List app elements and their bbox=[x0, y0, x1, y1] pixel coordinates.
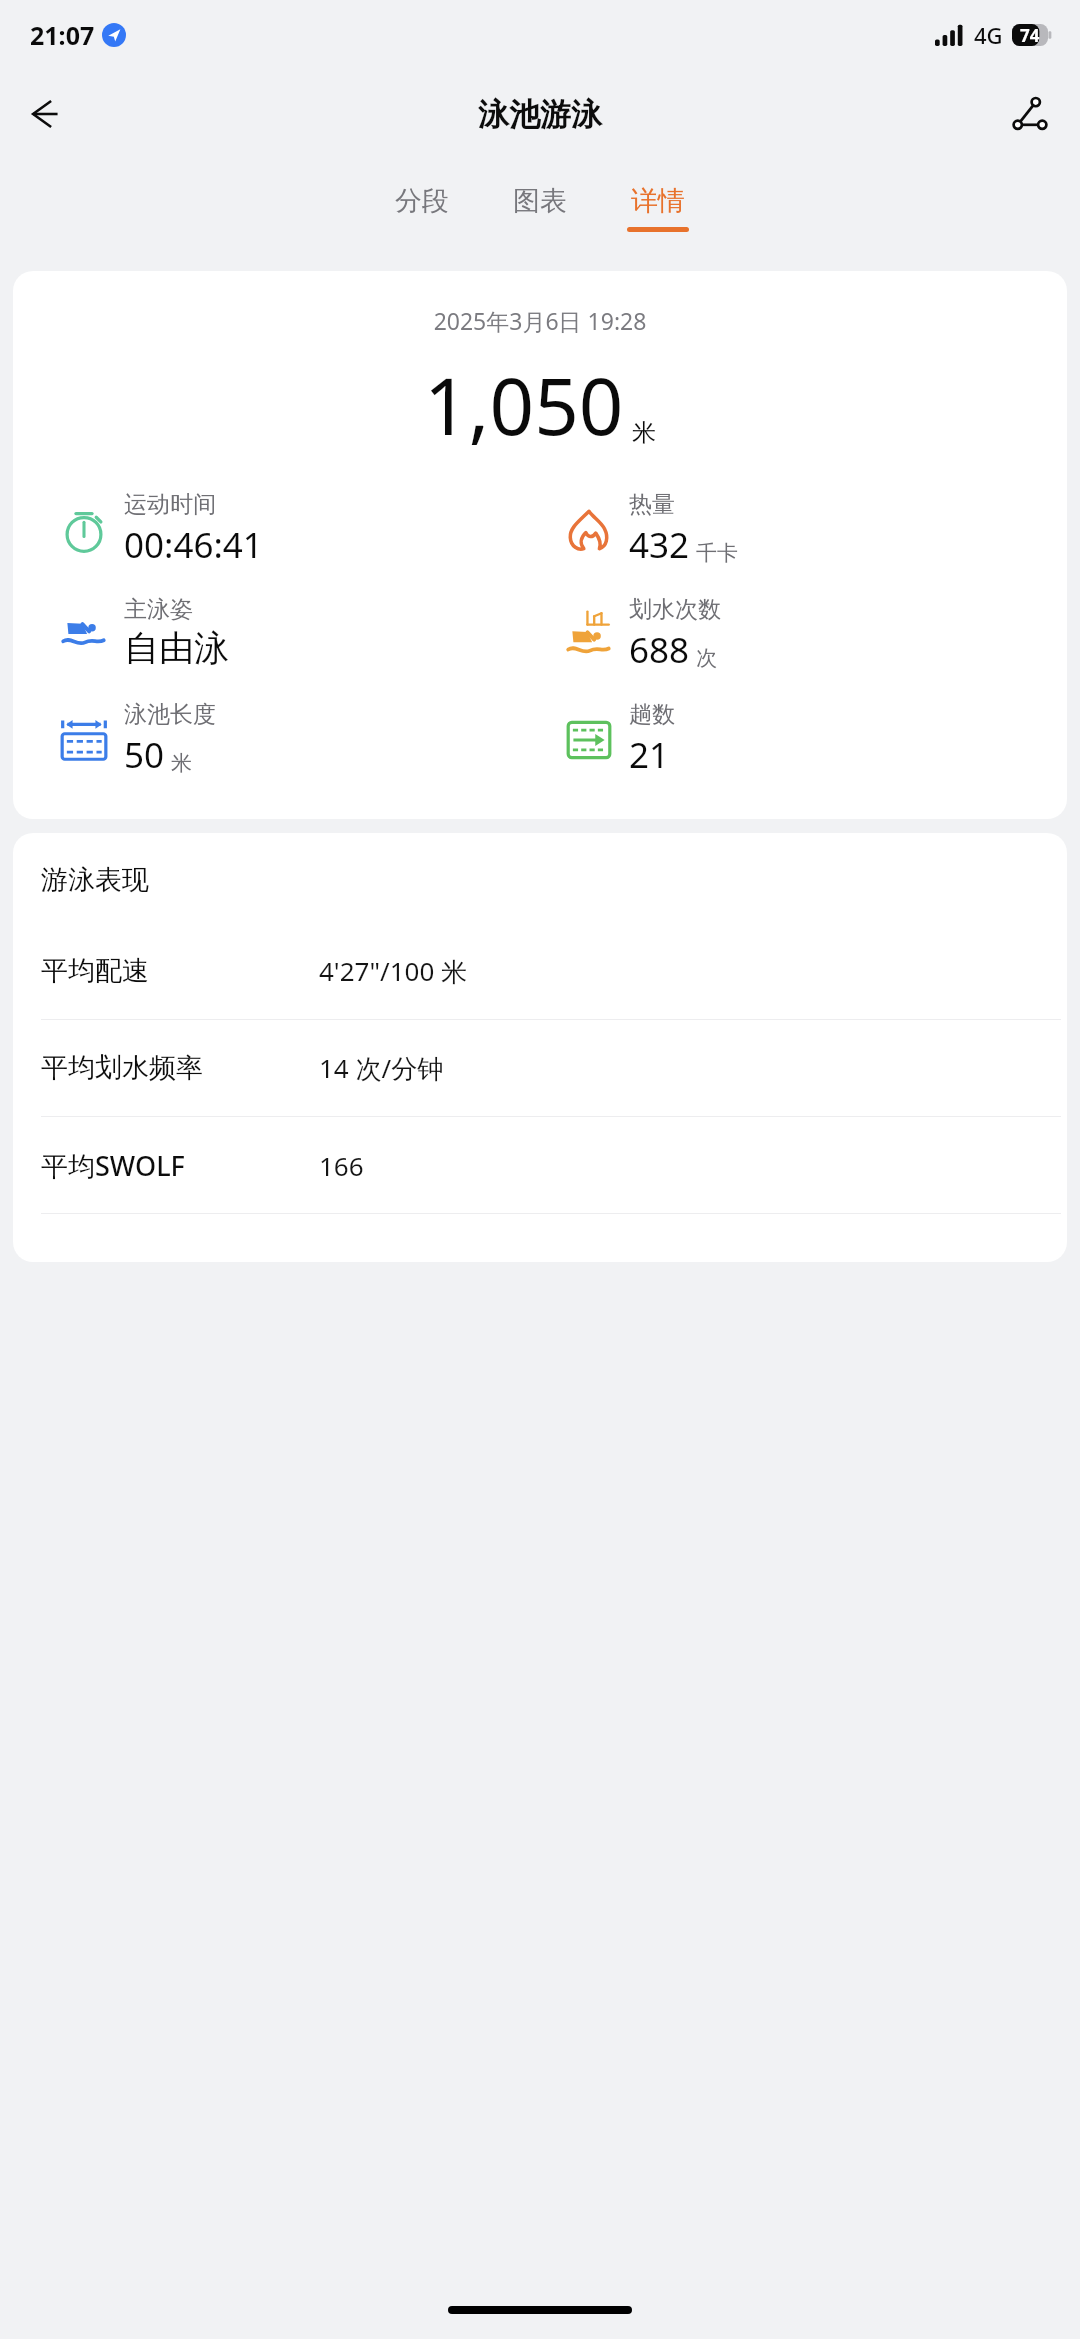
staticText: 2025年3月6日 19:28 bbox=[13, 305, 1067, 336]
button[interactable]: 热量 bbox=[540, 490, 1067, 569]
staticText: 21:07 bbox=[30, 18, 95, 52]
button[interactable]: Share bbox=[998, 82, 1062, 146]
staticText: 米 bbox=[171, 750, 192, 776]
staticText: 主泳姿 bbox=[124, 595, 193, 624]
staticText: 运动时间 bbox=[124, 490, 216, 519]
staticText: 50 bbox=[124, 731, 165, 779]
staticText: 00:46:41 bbox=[124, 521, 263, 569]
button[interactable]: 平均SWOLF bbox=[13, 1117, 1067, 1213]
staticText: 分段 bbox=[395, 184, 449, 218]
staticText: 平均配速 bbox=[41, 954, 149, 988]
staticText: 74 bbox=[1020, 24, 1040, 47]
staticText: 详情 bbox=[631, 184, 685, 218]
staticText: 自由泳 bbox=[124, 626, 229, 670]
button[interactable]: 泳池长度 bbox=[13, 700, 540, 779]
staticText: 划水次数 bbox=[629, 595, 721, 624]
staticText: 米 bbox=[632, 418, 656, 448]
button[interactable]: 图表 bbox=[503, 180, 577, 236]
button[interactable]: 平均配速 bbox=[13, 923, 1067, 1019]
button[interactable]: 划水次数 bbox=[540, 595, 1067, 674]
staticText: 平均SWOLF bbox=[41, 1147, 185, 1184]
button[interactable]: 主泳姿 bbox=[13, 595, 540, 670]
staticText: 166 bbox=[319, 1148, 364, 1183]
staticText: 次 bbox=[696, 645, 717, 671]
button[interactable]: 分段 bbox=[385, 180, 459, 236]
staticText: 14 次/分钟 bbox=[319, 1050, 444, 1086]
staticText: 21 bbox=[629, 731, 670, 779]
staticText: 432 bbox=[629, 521, 690, 569]
button[interactable]: 运动时间 bbox=[13, 490, 540, 569]
staticText: 泳池游泳 bbox=[478, 95, 602, 134]
staticText: 4G bbox=[974, 20, 1003, 50]
staticText: 4'27"/100 米 bbox=[319, 953, 468, 989]
button[interactable]: 平均划水频率 bbox=[13, 1020, 1067, 1116]
staticText: 千卡 bbox=[696, 540, 738, 566]
staticText: 688 bbox=[629, 626, 690, 674]
staticText: 趟数 bbox=[629, 700, 675, 729]
button[interactable]: 趟数 bbox=[540, 700, 1067, 779]
button[interactable]: Back bbox=[14, 82, 78, 146]
staticText: 热量 bbox=[629, 490, 675, 519]
staticText: 1,050 bbox=[424, 352, 624, 458]
staticText: 游泳表现 bbox=[41, 863, 149, 897]
staticText: 平均划水频率 bbox=[41, 1051, 203, 1085]
staticText: 图表 bbox=[513, 184, 567, 218]
button[interactable]: 详情 bbox=[621, 180, 695, 236]
staticText: 泳池长度 bbox=[124, 700, 216, 729]
